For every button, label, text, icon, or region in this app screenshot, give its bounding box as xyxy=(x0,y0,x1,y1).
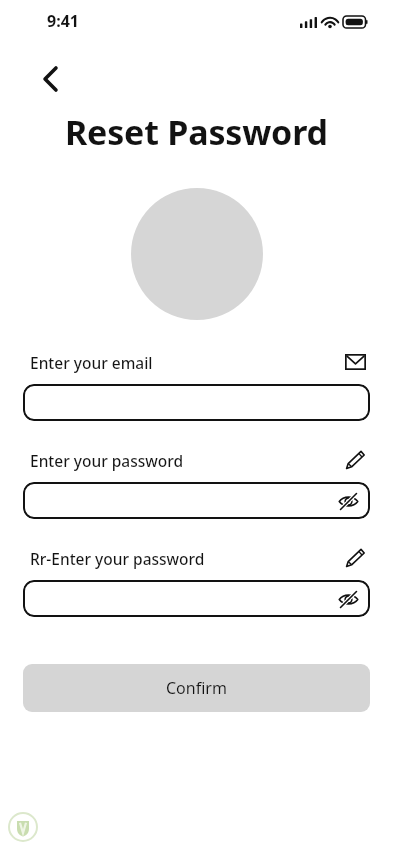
button[interactable]: Show password xyxy=(334,487,362,515)
button[interactable]: Back xyxy=(32,61,68,97)
button[interactable]: Email xyxy=(340,347,370,377)
button[interactable]: Confirm xyxy=(23,664,370,712)
button[interactable] xyxy=(23,384,370,421)
button[interactable] xyxy=(131,188,263,320)
staticText: Confirm xyxy=(166,677,227,699)
staticText: Rr-Enter your password xyxy=(30,548,340,569)
button[interactable]: Show password xyxy=(334,585,362,613)
staticText: 9:41 xyxy=(47,10,79,32)
button[interactable]: Show password xyxy=(23,482,370,519)
button[interactable]: Edit xyxy=(340,543,370,573)
staticText: Enter your email xyxy=(30,352,340,373)
button[interactable]: Edit xyxy=(340,445,370,475)
staticText: Enter your password xyxy=(30,450,340,471)
button[interactable]: Show password xyxy=(23,580,370,617)
staticText: Reset Password xyxy=(65,109,328,155)
